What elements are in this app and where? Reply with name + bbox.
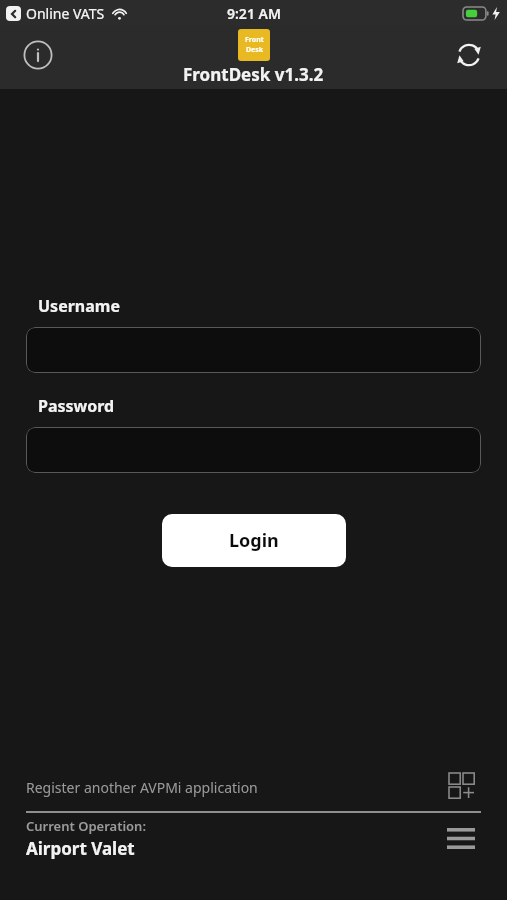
staticText: Username — [38, 295, 120, 317]
button[interactable]: Register another application — [445, 769, 481, 805]
button[interactable]: Refresh — [451, 37, 487, 73]
staticText: Password — [38, 395, 115, 417]
staticText: Register another AVPMi application — [26, 778, 258, 797]
button[interactable]: Menu — [441, 818, 481, 858]
button[interactable] — [26, 327, 481, 373]
staticText: FrontDesk v1.3.2 — [183, 63, 324, 86]
staticText: Current Operation: — [26, 817, 146, 835]
staticText: Online VATS — [26, 4, 105, 23]
button[interactable]: Current Operation: — [26, 813, 481, 863]
button[interactable]: Back — [6, 6, 21, 21]
staticText: Front — [245, 35, 264, 45]
staticText: 9:21 AM — [227, 4, 281, 23]
button[interactable] — [26, 427, 481, 473]
staticText: Airport Valet — [26, 837, 135, 860]
button[interactable]: Information — [20, 37, 56, 73]
staticText: Desk — [246, 45, 264, 55]
button[interactable]: Login — [162, 514, 346, 567]
staticText: Login — [229, 528, 279, 553]
button[interactable]: Register another AVPMi application — [26, 763, 481, 811]
